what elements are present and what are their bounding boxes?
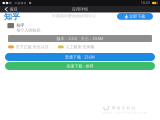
staticText: 高速下载 · 推荐 <box>66 63 93 69</box>
staticText: 返回 <box>10 7 18 12</box>
button[interactable]: 立即下载 <box>117 13 153 20</box>
staticText: 中国移动 <box>14 1 26 5</box>
staticText: 官方正版 安全认证 <box>16 44 49 49</box>
staticText: 人工检测 无病毒 <box>66 44 95 49</box>
staticText: 知乎 <box>4 12 20 21</box>
staticText: 知乎 <box>16 23 24 27</box>
staticText: 应用详情 <box>72 7 88 12</box>
staticText: 每个人的知识 <box>16 28 40 33</box>
button[interactable]: 返回 <box>0 6 21 12</box>
staticText: 版本：2.5.0 大小：23.6M <box>56 36 103 41</box>
staticText: 14:23 <box>141 1 150 5</box>
button[interactable]: 普通下载 · 23.6M <box>5 53 155 61</box>
staticText: 普通下载 · 23.6M <box>65 54 95 60</box>
button[interactable]: 高速下载 · 推荐 <box>5 62 155 70</box>
staticText: 中国移动爱游戏应用中心 <box>52 13 96 18</box>
staticText: w w w . n x n e t w o r k . c o m <box>103 111 146 114</box>
staticText: 立即下载 <box>129 14 145 19</box>
staticText: 网 侠 手 机 站 <box>111 105 135 110</box>
